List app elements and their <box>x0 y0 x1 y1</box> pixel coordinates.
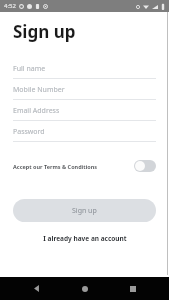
button[interactable]: Recent apps <box>120 277 146 300</box>
button[interactable]: Full name <box>13 59 156 80</box>
staticText: 4:52 <box>4 2 16 10</box>
button[interactable]: Accept terms toggle <box>134 160 156 172</box>
button[interactable]: Mobile Number <box>13 80 156 101</box>
staticText: Accept our Terms & Conditions <box>13 163 98 170</box>
staticText: Sign up <box>72 206 97 216</box>
button[interactable]: Home <box>72 277 98 300</box>
staticText: Email Address <box>13 106 60 116</box>
button[interactable]: Email Address <box>13 101 156 122</box>
staticText: Full name <box>13 64 46 74</box>
button[interactable]: Accept our Terms & Conditions <box>13 155 156 177</box>
staticText: Mobile Number <box>13 85 65 95</box>
staticText: I already have an account <box>43 234 127 243</box>
button[interactable]: Sign up <box>13 199 156 222</box>
button[interactable]: Back <box>23 277 49 300</box>
staticText: Password <box>13 127 45 137</box>
button[interactable]: Password <box>13 122 156 143</box>
staticText: Sign up <box>13 20 76 43</box>
button[interactable]: I already have an account <box>13 234 156 243</box>
